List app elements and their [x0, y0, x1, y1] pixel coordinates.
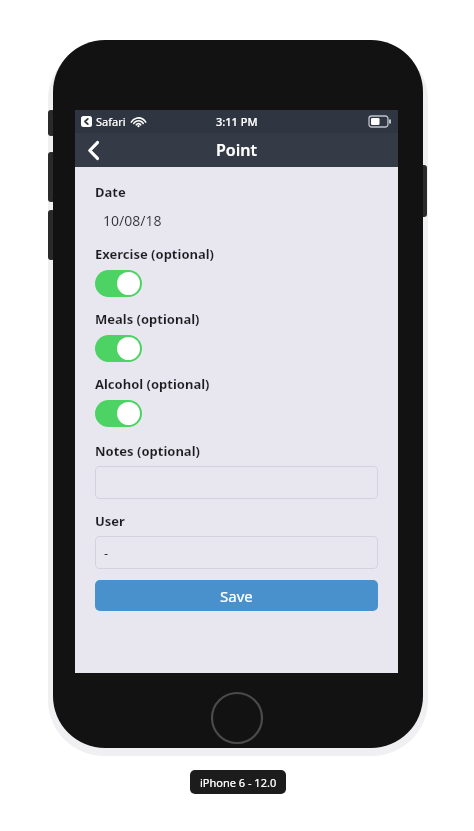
- staticText: 3:11 PM: [216, 114, 258, 129]
- staticText: Date: [95, 183, 126, 201]
- staticText: -: [104, 544, 109, 562]
- button[interactable]: [95, 466, 378, 499]
- staticText: User: [95, 512, 125, 530]
- staticText: Alcohol (optional): [95, 375, 210, 393]
- staticText: Point: [216, 139, 257, 161]
- staticText: Safari: [96, 114, 126, 129]
- staticText: Meals (optional): [95, 310, 200, 328]
- staticText: 10/08/18: [103, 211, 162, 230]
- button[interactable]: Toggle on: [95, 270, 142, 297]
- button[interactable]: Back to Safari: [81, 114, 145, 129]
- button[interactable]: Save: [95, 580, 378, 611]
- staticText: Notes (optional): [95, 442, 200, 460]
- button[interactable]: Toggle on: [95, 400, 142, 427]
- staticText: Save: [220, 586, 253, 606]
- button[interactable]: Back: [75, 133, 111, 167]
- button[interactable]: Toggle on: [95, 335, 142, 362]
- staticText: Exercise (optional): [95, 245, 215, 263]
- staticText: iPhone 6 - 12.0: [200, 775, 277, 790]
- button[interactable]: -: [95, 536, 378, 569]
